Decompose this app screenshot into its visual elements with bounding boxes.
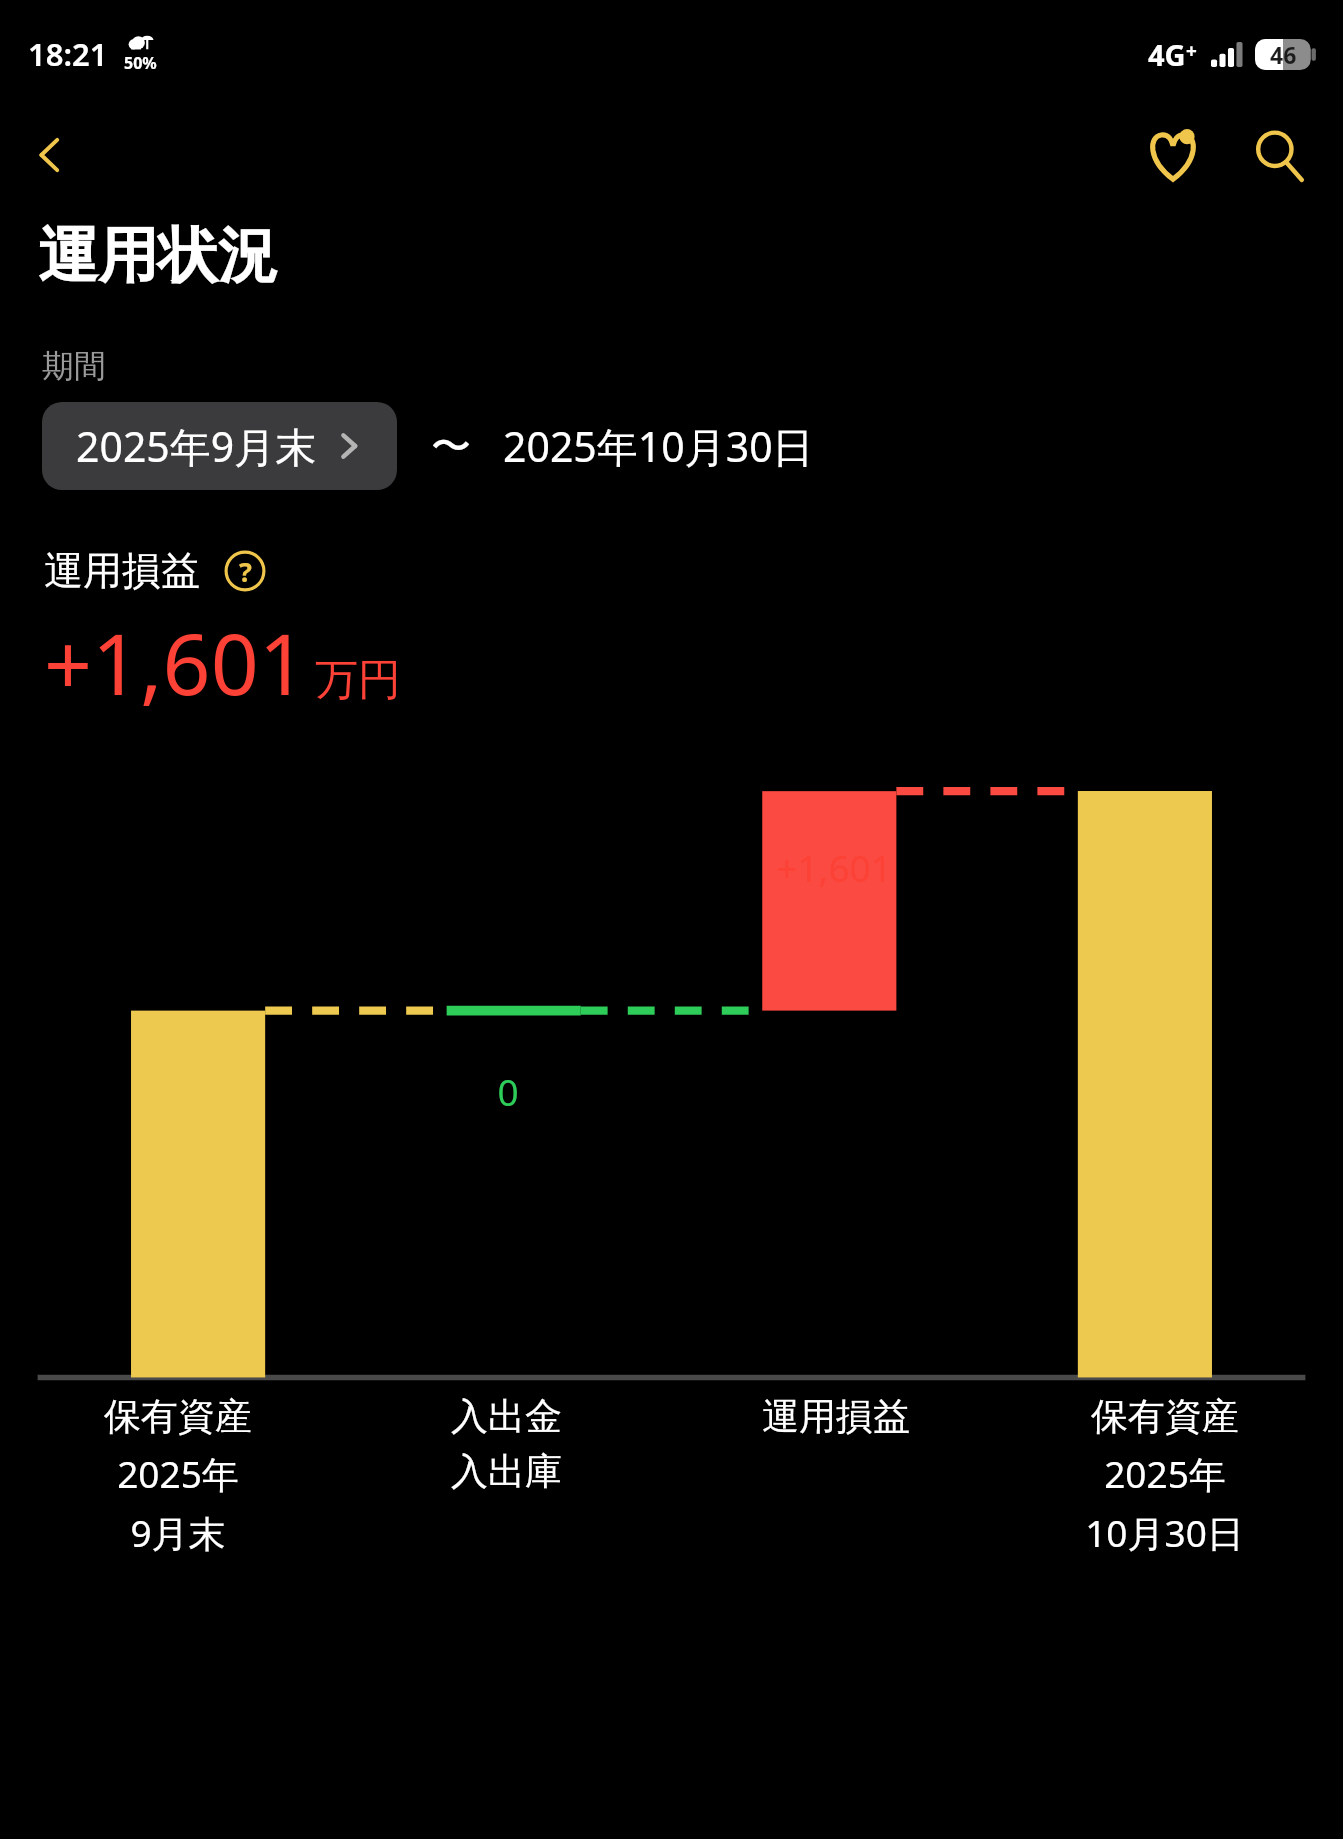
staticText: 2025年10月30日	[503, 418, 814, 474]
staticText: ?	[239, 553, 252, 590]
button[interactable]: 入出金	[342, 1393, 671, 1503]
staticText: +1,601	[44, 605, 307, 719]
staticText: 9月末	[130, 1507, 226, 1558]
staticText: 10月30日	[1085, 1507, 1244, 1558]
staticText: 万円	[315, 653, 401, 707]
button[interactable]: Help	[222, 548, 268, 594]
staticText: 運用損益	[762, 1393, 910, 1440]
button[interactable]: Search	[1237, 113, 1321, 197]
staticText: 18:21	[28, 33, 108, 75]
button[interactable]: 保有資産	[14, 1393, 342, 1566]
staticText: 入出庫	[451, 1448, 562, 1495]
staticText: 46	[1270, 39, 1297, 70]
staticText: +1,601	[671, 842, 997, 892]
staticText: 保有資産	[104, 1393, 252, 1440]
staticText: 期間	[42, 346, 106, 386]
staticText: 〜	[431, 421, 471, 471]
staticText: 0	[345, 1066, 671, 1116]
staticText: +	[1186, 38, 1197, 64]
button[interactable]: 運用損益	[671, 1393, 1000, 1448]
staticText: 4G	[1148, 35, 1186, 74]
staticText: 4,278	[997, 842, 1323, 892]
button[interactable]: 保有資産	[1000, 1393, 1329, 1566]
staticText: 2025年	[1104, 1448, 1226, 1499]
staticText: 2,676	[20, 1066, 345, 1116]
staticText: 2025年9月末	[76, 418, 317, 474]
staticText: 運用状況	[38, 218, 278, 294]
staticText: 2025年	[117, 1448, 239, 1499]
staticText: 入出金	[451, 1393, 562, 1440]
button[interactable]: Back	[12, 117, 88, 193]
button[interactable]: 2025年9月末	[42, 402, 397, 490]
staticText: 50%	[124, 52, 157, 74]
staticText: 保有資産	[1091, 1393, 1239, 1440]
button[interactable]: Favorites	[1131, 113, 1215, 197]
staticText: 運用損益	[44, 546, 200, 595]
